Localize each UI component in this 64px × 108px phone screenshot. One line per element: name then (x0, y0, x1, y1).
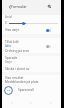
staticText: Visa resultat (5, 76, 24, 80)
button[interactable]: Back (6, 3, 13, 10)
staticText: Varje (5, 60, 12, 64)
staticText: Aktiv (5, 44, 12, 48)
button[interactable]: Search (46, 3, 53, 10)
staticText: Skicka i slutet av (5, 67, 30, 71)
button[interactable]: Sparade (2, 55, 61, 64)
button[interactable]: Visa resultat (2, 75, 61, 81)
staticText: Formulär (11, 4, 27, 9)
staticText: Spara mall (18, 88, 34, 92)
button[interactable]: Skicka i slutet av (2, 66, 61, 72)
staticText: Ordning på svar (5, 49, 30, 53)
staticText: 0 (5, 21, 7, 25)
staticText: Visa varje (5, 28, 20, 32)
staticText: Antal (5, 15, 13, 19)
button[interactable]: Ordning på svar (2, 48, 61, 54)
staticText: Sparade (5, 56, 18, 60)
button[interactable]: OK (2, 85, 61, 95)
button[interactable]: Meddelanden på plats (2, 79, 61, 85)
staticText: OK (7, 89, 11, 92)
staticText: Meddelanden på plats (5, 80, 39, 84)
button[interactable]: Tillåt bild (2, 38, 61, 49)
button[interactable]: Visa varje (2, 26, 61, 34)
staticText: Tillåt bild (5, 40, 19, 44)
